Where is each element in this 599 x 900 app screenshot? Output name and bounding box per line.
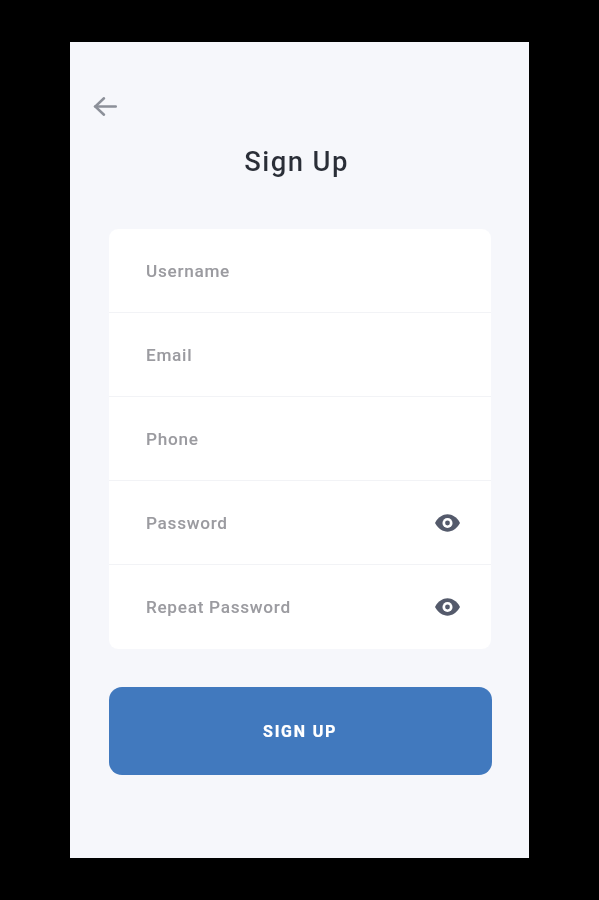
staticText: Email [146,345,193,365]
button[interactable]: Username [109,229,491,312]
button[interactable]: Show password [425,585,469,629]
button[interactable]: Email [109,313,491,396]
button[interactable]: Password [109,481,491,564]
button[interactable]: SIGN UP [109,687,492,775]
staticText: Username [146,261,231,281]
button[interactable]: Repeat Password [109,565,491,648]
staticText: Phone [146,429,199,449]
staticText: Repeat Password [146,597,291,617]
button[interactable]: Phone [109,397,491,480]
button[interactable]: Show password [425,501,469,545]
staticText: Sign Up [244,145,349,177]
staticText: SIGN UP [263,722,338,741]
staticText: Password [146,513,228,533]
button[interactable]: Back [79,80,131,132]
